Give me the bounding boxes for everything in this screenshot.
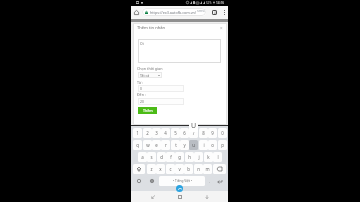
staticText: 4 bbox=[214, 11, 216, 15]
staticText: 0 bbox=[221, 130, 224, 136]
staticText: r bbox=[165, 142, 167, 148]
button[interactable]: g bbox=[175, 152, 184, 162]
staticText: Thêm bbox=[143, 108, 153, 113]
staticText: y bbox=[183, 142, 186, 148]
staticText: i bbox=[203, 142, 205, 148]
staticText: 52% bbox=[206, 1, 212, 4]
staticText: 1 bbox=[136, 130, 139, 136]
staticText: v bbox=[178, 166, 181, 172]
staticText: c bbox=[169, 166, 172, 172]
button[interactable]: l bbox=[213, 152, 222, 162]
button[interactable]: f bbox=[166, 152, 175, 162]
button[interactable]: t bbox=[171, 140, 180, 150]
button[interactable]: https://ex3.autofb.com.vn/ bbox=[142, 8, 206, 16]
button[interactable]: 20 bbox=[138, 98, 184, 105]
button[interactable]: 8 bbox=[199, 128, 208, 138]
staticText: g bbox=[178, 154, 181, 160]
staticText: l bbox=[217, 154, 219, 160]
staticText: d bbox=[160, 154, 163, 160]
button[interactable]: s bbox=[147, 152, 156, 162]
staticText: f bbox=[170, 154, 172, 160]
staticText: e bbox=[155, 142, 158, 148]
button[interactable]: b bbox=[184, 164, 193, 174]
button[interactable]: i bbox=[199, 140, 208, 150]
button[interactable]: 1 bbox=[133, 128, 142, 138]
button[interactable]: Shift bbox=[133, 164, 145, 174]
button[interactable]: p bbox=[218, 140, 227, 150]
button[interactable]: 2 bbox=[143, 128, 152, 138]
staticText: 0 bbox=[140, 86, 142, 91]
button[interactable]: 3 bbox=[152, 128, 161, 138]
staticText: https://ex3.autofb.com.vn/ bbox=[150, 10, 197, 15]
staticText: 9 bbox=[211, 130, 214, 136]
button[interactable]: Thêm bbox=[138, 107, 157, 114]
staticText: Thêm tin nhắn bbox=[137, 25, 166, 31]
staticText: Tất cả bbox=[140, 73, 150, 78]
button[interactable]: 0 bbox=[218, 128, 227, 138]
button[interactable]: c bbox=[166, 164, 175, 174]
button[interactable]: j bbox=[194, 152, 203, 162]
button[interactable]: Backspace bbox=[213, 164, 226, 174]
staticText: × bbox=[220, 25, 223, 31]
button[interactable]: e bbox=[152, 140, 161, 150]
staticText: s bbox=[150, 154, 153, 160]
button[interactable]: u bbox=[189, 140, 198, 150]
staticText: sms/ca bbox=[197, 8, 206, 16]
button[interactable]: Back bbox=[147, 191, 158, 202]
button[interactable]: Settings bbox=[146, 176, 158, 186]
button[interactable]: Home bbox=[132, 6, 141, 19]
button[interactable]: 4 bbox=[161, 128, 170, 138]
button[interactable]: o bbox=[208, 140, 217, 150]
staticText: Đến : bbox=[137, 92, 146, 97]
staticText: 14:16 bbox=[216, 1, 225, 4]
button[interactable]: k bbox=[204, 152, 213, 162]
button[interactable]: w bbox=[143, 140, 152, 150]
staticText: p bbox=[221, 142, 224, 148]
staticText: Từ : bbox=[137, 80, 144, 85]
button[interactable]: Close bbox=[218, 25, 224, 31]
button[interactable]: x bbox=[156, 164, 165, 174]
staticText: u bbox=[192, 142, 195, 148]
staticText: U bbox=[191, 121, 197, 131]
button[interactable]: Enter bbox=[214, 176, 225, 186]
button[interactable]: 5 bbox=[171, 128, 180, 138]
button[interactable]: a bbox=[138, 152, 147, 162]
button[interactable]: Tabs bbox=[210, 7, 218, 18]
button[interactable]: 9 bbox=[208, 128, 217, 138]
button[interactable]: r bbox=[161, 140, 170, 150]
staticText: a bbox=[141, 154, 144, 160]
button[interactable]: 7 bbox=[189, 128, 198, 138]
staticText: • Tiếng Việt • bbox=[173, 179, 192, 183]
staticText: Chọn thời gian bbox=[137, 66, 163, 71]
button[interactable]: z bbox=[147, 164, 156, 174]
staticText: m bbox=[205, 166, 210, 172]
staticText: 3 bbox=[155, 130, 158, 136]
button[interactable]: y bbox=[180, 140, 189, 150]
staticText: 7 bbox=[192, 130, 195, 136]
button[interactable]: h bbox=[185, 152, 194, 162]
button[interactable]: Hide keyboard bbox=[201, 191, 212, 202]
button[interactable]: n bbox=[194, 164, 203, 174]
staticText: . bbox=[209, 179, 210, 184]
button[interactable]: m bbox=[203, 164, 212, 174]
staticText: 6 bbox=[183, 130, 186, 136]
button[interactable]: v bbox=[175, 164, 184, 174]
button[interactable]: • Tiếng Việt • bbox=[159, 176, 205, 186]
button[interactable]: Home bbox=[174, 191, 185, 202]
staticText: j bbox=[198, 154, 200, 160]
staticText: 4 bbox=[164, 130, 167, 136]
button[interactable]: 0 bbox=[138, 85, 184, 92]
button[interactable]: More options bbox=[220, 6, 228, 19]
staticText: b bbox=[187, 166, 190, 172]
staticText: h bbox=[188, 154, 191, 160]
button[interactable]: Emoji bbox=[133, 176, 145, 186]
staticText: 5 bbox=[174, 130, 177, 136]
staticText: k bbox=[207, 154, 210, 160]
button[interactable]: d bbox=[157, 152, 166, 162]
button[interactable]: Tất cả bbox=[138, 72, 162, 78]
button[interactable]: Oi bbox=[138, 39, 221, 63]
button[interactable]: q bbox=[133, 140, 142, 150]
button[interactable]: 6 bbox=[180, 128, 189, 138]
button[interactable]: Voice input bbox=[176, 185, 183, 192]
